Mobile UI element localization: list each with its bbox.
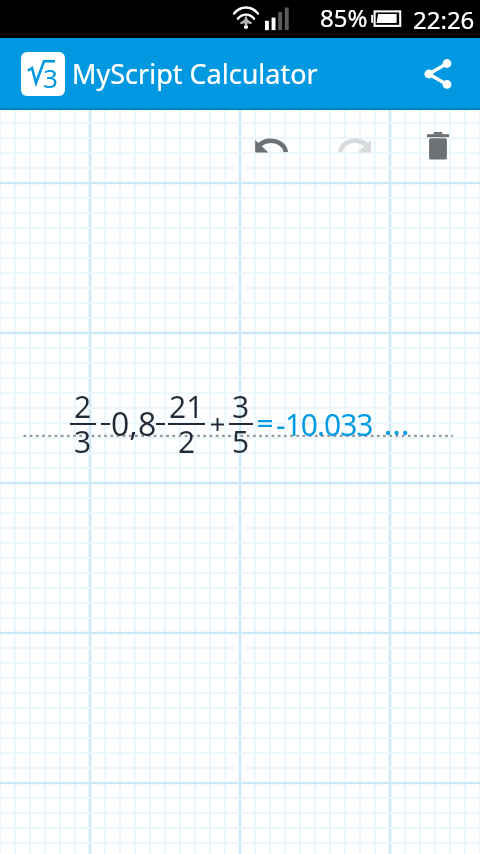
staticText: 2: [74, 386, 92, 427]
button[interactable]: Clear: [412, 120, 464, 172]
button[interactable]: Undo: [244, 120, 296, 172]
staticText: -10.033: [276, 404, 373, 445]
staticText: 21: [169, 386, 204, 427]
staticText: 5: [232, 421, 250, 462]
button[interactable]: Share: [408, 44, 468, 104]
staticText: 22:26: [413, 3, 475, 36]
staticText: 3: [43, 60, 58, 95]
staticText: 3: [74, 421, 92, 462]
staticText: 3: [232, 386, 250, 427]
staticText: 2: [178, 421, 196, 462]
button[interactable]: Redo: [330, 120, 382, 172]
staticText: 85%: [320, 1, 368, 34]
staticText: MyScript Calculator: [72, 55, 318, 92]
staticText: 0,8: [111, 402, 157, 446]
